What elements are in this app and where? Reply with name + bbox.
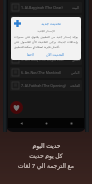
staticText: الإصدار الجديد	[14, 29, 78, 33]
button[interactable]: 3. Al-Masad (The Palm Fibre)	[10, 28, 82, 39]
button[interactable]: لاحقا	[25, 52, 36, 58]
button[interactable]: 4. Al-Ikhlas (The Sincerity)	[10, 41, 82, 52]
staticText: يوجد إصدار جديد من التطبيق يحتوي على ممي…	[14, 35, 78, 48]
button[interactable]: 1. Al-Bayyinah (The Clear)	[10, 2, 82, 13]
button[interactable]: التحديث الآن	[44, 51, 67, 58]
staticText: الفاتحة	[70, 84, 80, 88]
button[interactable]: 5. Al-Falaq (The Daybreak)	[10, 54, 82, 65]
button[interactable]: 6. An-Nas (The Mankind)	[10, 67, 82, 78]
button[interactable]: Favourites	[10, 101, 23, 114]
staticText: 3. Al-Masad (The Palm Fibre)	[21, 31, 70, 36]
staticText: 4. Al-Ikhlas (The Sincerity)	[21, 44, 68, 49]
staticText: البينة	[72, 6, 80, 10]
staticText: 7. Al-Fatihah (The Opening)	[21, 83, 70, 88]
staticText: 6. An-Nas (The Mankind)	[21, 70, 71, 75]
staticText: 5. Al-Falaq (The Daybreak)	[21, 57, 72, 62]
staticText: كل يوم حديث	[29, 152, 63, 160]
staticText: 1. Al-Bayyinah (The Clear)	[21, 5, 72, 10]
button[interactable]: Home	[34, 118, 59, 128]
button[interactable]: 2. Al-Nasr (The Divine Support)	[10, 15, 82, 26]
staticText: مع الترجمة الي 7 لغات	[18, 162, 74, 170]
staticText: التحديث الآن	[46, 52, 65, 57]
staticText: الفلق	[72, 58, 80, 62]
staticText: لاحقا	[27, 53, 34, 57]
button[interactable]: Back	[8, 118, 34, 128]
staticText: الناس	[71, 71, 80, 75]
staticText: حديث اليوم	[32, 142, 61, 150]
button[interactable]: 7. Al-Fatihah (The Opening)	[10, 80, 82, 91]
button[interactable]: Recents	[59, 118, 84, 128]
staticText: تحديث جديد	[24, 21, 78, 26]
